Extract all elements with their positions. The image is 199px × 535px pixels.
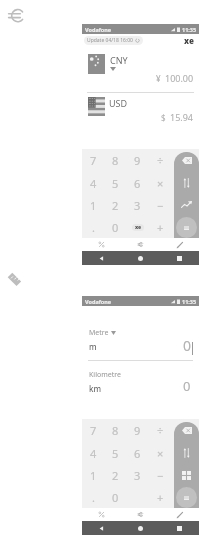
button[interactable]: Equals <box>176 217 197 238</box>
staticText: 3 <box>134 468 141 483</box>
button[interactable]: Currency <box>121 508 160 521</box>
staticText: 7 <box>90 153 97 168</box>
button[interactable]: − <box>149 194 172 216</box>
button[interactable]: Unit list <box>174 464 199 486</box>
button[interactable]: 7 <box>82 149 104 172</box>
button[interactable]: + <box>149 486 172 508</box>
staticText: 4 <box>90 446 97 461</box>
staticText: Metre <box>89 328 109 338</box>
button[interactable]: Home <box>121 251 160 265</box>
button[interactable]: Recents <box>160 251 199 265</box>
staticText: 6 <box>134 176 141 191</box>
button[interactable]: × <box>149 442 172 464</box>
staticText: + <box>157 220 164 235</box>
staticText: 7 <box>90 423 97 438</box>
button[interactable]: Edit <box>160 508 199 521</box>
button[interactable]: 4 <box>82 442 104 464</box>
button[interactable]: 9 <box>126 149 149 172</box>
button[interactable]: Home <box>121 521 160 535</box>
staticText: USD <box>109 97 128 109</box>
button[interactable]: Update 04/18 16:00 <box>84 36 143 45</box>
button[interactable]: Equals <box>176 487 197 508</box>
button[interactable]: 5 <box>104 172 126 194</box>
button[interactable]: CNY <box>82 50 199 92</box>
staticText: 2 <box>112 468 119 483</box>
button[interactable]: 6 <box>126 442 149 464</box>
staticText: 8 <box>112 153 119 168</box>
button[interactable]: Back <box>82 521 121 535</box>
staticText: 11:35 <box>182 26 197 33</box>
button[interactable]: 4 <box>82 172 104 194</box>
staticText: 1 <box>90 198 97 213</box>
staticText: ¥ <box>156 73 161 84</box>
staticText: Update 04/18 16:00 <box>87 37 133 44</box>
staticText: 0 <box>112 220 119 235</box>
staticText: 2 <box>112 198 119 213</box>
staticText: 11:35 <box>182 298 197 305</box>
button[interactable]: 9 <box>126 419 149 442</box>
staticText: ÷ <box>157 153 164 168</box>
button[interactable]: Edit <box>160 238 199 251</box>
staticText: 8 <box>112 423 119 438</box>
staticText: 15.94 <box>170 111 194 123</box>
staticText: × <box>157 176 164 191</box>
staticText: 3 <box>134 198 141 213</box>
staticText: 1 <box>90 468 97 483</box>
button[interactable]: Metre <box>82 328 199 356</box>
staticText: − <box>157 198 164 213</box>
button[interactable]: 0 <box>104 486 126 508</box>
button[interactable]: × <box>149 172 172 194</box>
staticText: 5 <box>112 176 119 191</box>
button[interactable]: Rate chart <box>174 194 199 216</box>
button[interactable]: 3 <box>126 464 149 486</box>
button[interactable]: Calculator <box>82 238 121 251</box>
staticText: xe <box>184 35 194 46</box>
button[interactable]: Back <box>82 251 121 265</box>
button[interactable]: xe <box>184 35 199 46</box>
staticText: 0 <box>112 490 119 505</box>
button[interactable]: Swap values <box>174 172 199 194</box>
staticText: 0 <box>183 336 192 355</box>
button[interactable]: Kilometre <box>82 370 199 395</box>
button[interactable]: Swap values <box>174 442 199 464</box>
button[interactable]: Calculator <box>82 508 121 521</box>
button[interactable]: 7 <box>82 419 104 442</box>
button[interactable]: USD <box>82 93 199 128</box>
button[interactable]: ÷ <box>149 149 172 172</box>
button[interactable]: 2 <box>104 464 126 486</box>
button[interactable]: + <box>149 216 172 238</box>
staticText: $ <box>161 112 166 123</box>
button[interactable]: 6 <box>126 172 149 194</box>
button[interactable]: 3 <box>126 194 149 216</box>
button[interactable]: 1 <box>82 194 104 216</box>
staticText: . <box>92 490 95 505</box>
button[interactable]: Backspace <box>174 419 199 442</box>
button[interactable]: 1 <box>82 464 104 486</box>
button[interactable]: 8 <box>104 149 126 172</box>
staticText: 100.00 <box>165 72 194 84</box>
button[interactable]: Backspace <box>174 149 199 172</box>
staticText: xe <box>135 224 142 231</box>
button[interactable]: xe <box>126 216 149 238</box>
staticText: Vodafone <box>85 298 112 305</box>
staticText: ÷ <box>157 423 164 438</box>
button[interactable]: 0 <box>104 216 126 238</box>
staticText: × <box>157 446 164 461</box>
button[interactable]: 8 <box>104 419 126 442</box>
staticText: . <box>92 220 95 235</box>
button[interactable]: 5 <box>104 442 126 464</box>
staticText: 4 <box>90 176 97 191</box>
staticText: 5 <box>112 446 119 461</box>
staticText: 6 <box>134 446 141 461</box>
staticText: CNY <box>110 54 128 66</box>
staticText: − <box>157 468 164 483</box>
button[interactable]: 2 <box>104 194 126 216</box>
button[interactable]: ÷ <box>149 419 172 442</box>
button[interactable]: Recents <box>160 521 199 535</box>
button[interactable]: − <box>149 464 172 486</box>
button[interactable]: Currency <box>121 238 160 251</box>
staticText: km <box>89 383 102 394</box>
